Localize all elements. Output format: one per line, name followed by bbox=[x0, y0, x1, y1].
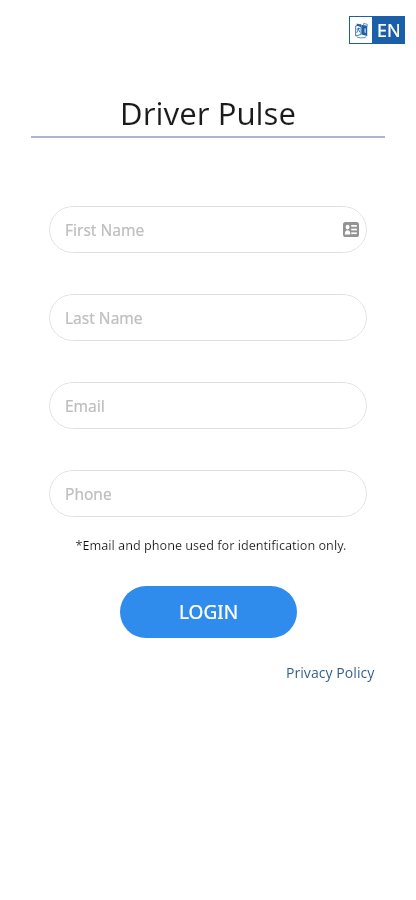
button[interactable]: LOGIN bbox=[120, 586, 297, 638]
staticText: Last Name bbox=[65, 307, 143, 328]
staticText: *Email and phone used for identification… bbox=[6, 537, 416, 554]
button[interactable]: Email bbox=[49, 382, 367, 429]
button[interactable]: Phone bbox=[49, 470, 367, 517]
staticText: Privacy Policy bbox=[286, 663, 375, 682]
button[interactable]: First Name bbox=[49, 206, 367, 253]
staticText: Phone bbox=[65, 483, 112, 504]
staticText: EN bbox=[377, 18, 401, 43]
staticText: LOGIN bbox=[179, 599, 239, 625]
button[interactable]: Change language bbox=[349, 16, 405, 44]
staticText: Driver Pulse bbox=[0, 92, 416, 134]
button[interactable]: Privacy Policy bbox=[286, 663, 375, 682]
staticText: First Name bbox=[65, 219, 145, 240]
staticText: Email bbox=[65, 395, 105, 416]
button[interactable]: Last Name bbox=[49, 294, 367, 341]
